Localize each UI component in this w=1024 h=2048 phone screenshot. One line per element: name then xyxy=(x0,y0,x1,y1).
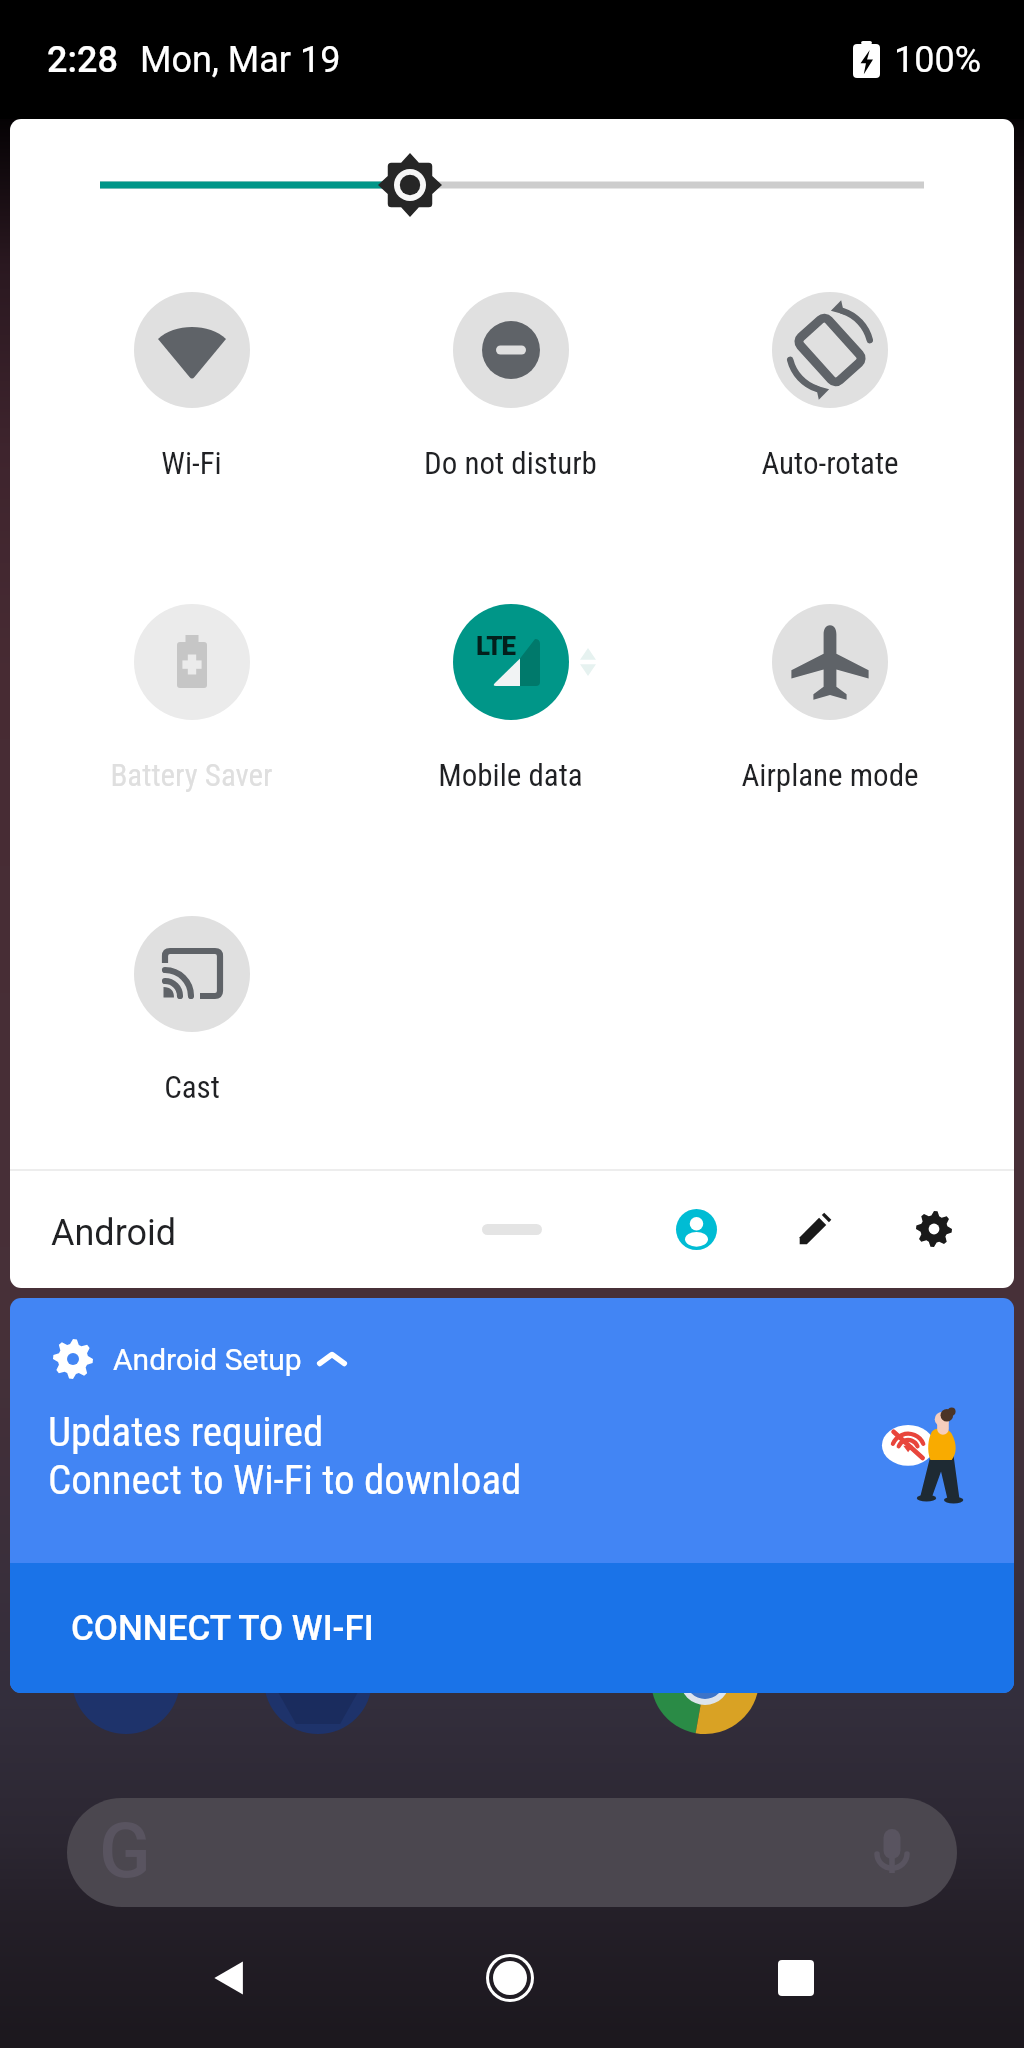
staticText: Battery Saver xyxy=(110,757,273,793)
staticText: LTE xyxy=(476,631,515,661)
staticText: Android Setup xyxy=(113,1342,302,1377)
button[interactable]: Do not disturb xyxy=(351,234,670,484)
button[interactable]: Brightness xyxy=(10,139,1014,231)
button[interactable]: Expand Android Setup xyxy=(53,1334,346,1384)
button[interactable]: User account xyxy=(664,1197,728,1261)
button[interactable]: Back xyxy=(180,1907,280,2048)
button[interactable]: LTE xyxy=(351,546,670,796)
button[interactable]: Home xyxy=(460,1907,560,2048)
staticText: Android xyxy=(51,1212,177,1254)
staticText: Mon, Mar 19 xyxy=(140,39,341,81)
staticText: Auto-rotate xyxy=(761,445,899,481)
staticText: Connect to Wi-Fi to download xyxy=(48,1456,522,1504)
button[interactable]: Battery Saver xyxy=(32,546,351,796)
button[interactable]: Auto-rotate xyxy=(670,234,989,484)
staticText: Cast xyxy=(164,1069,220,1105)
staticText: 2:28 xyxy=(47,39,118,81)
staticText: Updates required xyxy=(48,1408,324,1456)
button[interactable]: Wi-Fi xyxy=(32,234,351,484)
button[interactable]: Android Setup notification xyxy=(10,1298,1014,1563)
button[interactable]: Recents xyxy=(746,1907,846,2048)
button[interactable]: Settings xyxy=(902,1197,966,1261)
staticText: Airplane mode xyxy=(741,757,919,793)
staticText: Wi-Fi xyxy=(161,445,222,481)
button[interactable]: Edit xyxy=(783,1197,847,1261)
staticText: G xyxy=(99,1806,151,1895)
staticText: Mobile data xyxy=(438,757,583,793)
button[interactable]: Search xyxy=(67,1798,957,1907)
staticText: CONNECT TO WI-FI xyxy=(71,1608,374,1649)
staticText: Do not disturb xyxy=(424,445,597,481)
button[interactable]: Airplane mode xyxy=(670,546,989,796)
button[interactable]: CONNECT TO WI-FI xyxy=(10,1563,1014,1693)
staticText: 100% xyxy=(894,39,982,81)
button[interactable]: Cast xyxy=(32,858,351,1108)
